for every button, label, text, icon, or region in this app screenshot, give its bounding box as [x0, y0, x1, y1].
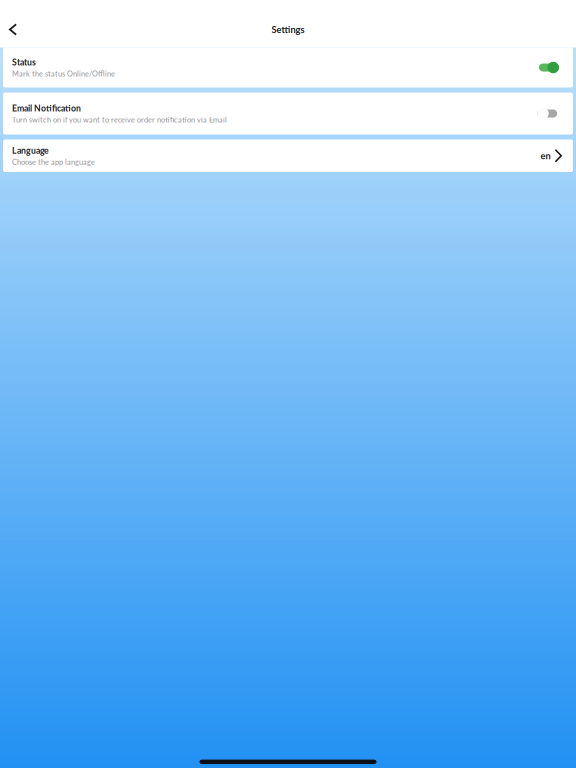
staticText: Email Notification [12, 103, 81, 113]
staticText: Language [12, 145, 49, 156]
staticText: Turn switch on if you want to receive or… [12, 115, 227, 124]
staticText: Settings [271, 24, 304, 35]
button[interactable]: Back [0, 15, 26, 44]
button[interactable]: Email Notification, off [537, 107, 557, 119]
staticText: Choose the app language [12, 158, 95, 166]
staticText: en [541, 150, 551, 161]
button[interactable]: Email Notification [0, 92, 576, 134]
button[interactable]: Language [0, 139, 576, 172]
button[interactable]: Status [0, 47, 576, 87]
staticText: Status [12, 57, 36, 67]
staticText: Mark the status Online/Offline [12, 69, 115, 78]
button[interactable]: Status, on [539, 61, 559, 73]
